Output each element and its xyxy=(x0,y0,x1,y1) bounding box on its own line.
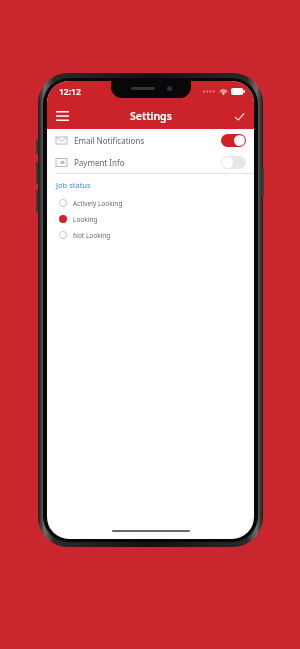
button[interactable]: On xyxy=(221,134,246,147)
button[interactable]: Email Notifications xyxy=(47,129,254,151)
button[interactable]: Not Looking xyxy=(47,227,254,243)
staticText: Payment Info xyxy=(74,157,125,168)
button[interactable]: Payment Info xyxy=(47,151,254,173)
button[interactable]: Save settings xyxy=(230,107,248,125)
button[interactable]: Open navigation menu xyxy=(53,107,71,125)
staticText: 12:12 xyxy=(59,86,81,98)
staticText: Not Looking xyxy=(73,231,111,240)
button[interactable]: Off xyxy=(221,156,246,169)
button[interactable]: Actively Looking xyxy=(47,195,254,211)
button[interactable]: Looking xyxy=(47,211,254,227)
staticText: Settings xyxy=(130,109,172,123)
staticText: Job status xyxy=(56,180,91,190)
staticText: Email Notifications xyxy=(74,135,145,146)
staticText: Actively Looking xyxy=(73,199,123,208)
staticText: Looking xyxy=(73,215,98,224)
